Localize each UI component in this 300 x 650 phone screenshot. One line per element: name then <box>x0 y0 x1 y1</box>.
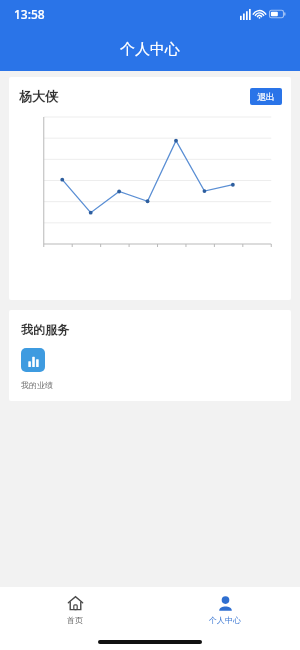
other: 首页 <box>67 595 84 612</box>
button[interactable]: 首页 <box>0 587 150 633</box>
button[interactable]: 个人中心 <box>150 587 300 633</box>
staticText: 杨大侠 <box>19 88 58 104</box>
staticText: 个人中心 <box>120 40 180 59</box>
button[interactable]: 退出 <box>250 88 282 105</box>
staticText: 个人中心 <box>209 615 241 625</box>
staticText: 首页 <box>67 615 83 625</box>
staticText: 我的服务 <box>21 322 69 337</box>
other: 个人中心 <box>217 595 234 612</box>
button[interactable]: 我的业绩 <box>21 348 67 390</box>
staticText: 13:58 <box>14 6 45 22</box>
staticText: 退出 <box>257 91 275 102</box>
staticText: 我的业绩 <box>21 380 53 390</box>
